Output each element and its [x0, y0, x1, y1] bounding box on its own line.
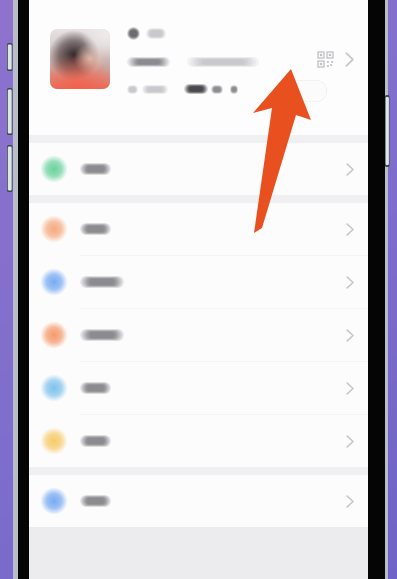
button[interactable]	[29, 362, 368, 414]
button[interactable]	[279, 80, 327, 102]
button[interactable]: Profile photo	[29, 0, 368, 118]
button[interactable]: My QR code	[316, 52, 356, 67]
button[interactable]	[29, 415, 368, 467]
button[interactable]	[29, 203, 368, 255]
other: My QR code	[318, 52, 333, 67]
button[interactable]	[29, 309, 368, 361]
button[interactable]	[29, 475, 368, 527]
button[interactable]	[29, 256, 368, 308]
button[interactable]	[29, 143, 368, 195]
button[interactable]: Profile photo	[50, 29, 110, 89]
